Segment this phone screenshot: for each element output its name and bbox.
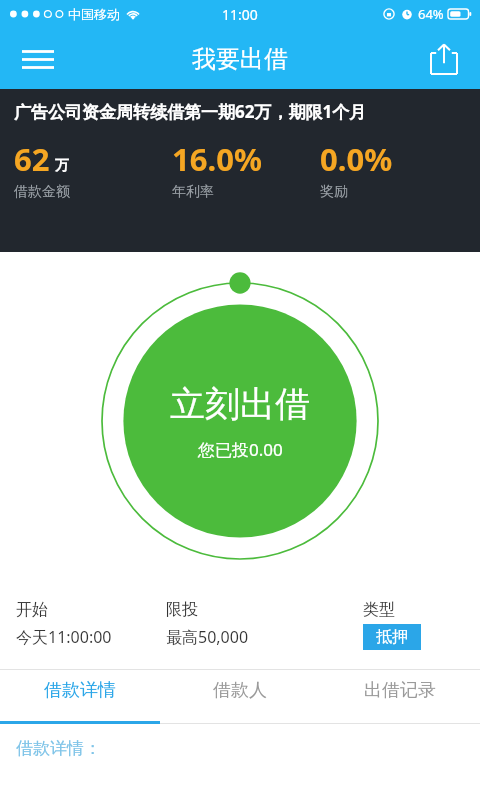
staticText: 62 xyxy=(14,138,50,180)
staticText: 奖励 xyxy=(320,183,348,201)
staticText: 年利率 xyxy=(172,183,214,201)
staticText: 出借记录 xyxy=(364,679,436,702)
staticText: 中国移动 xyxy=(68,6,120,22)
button[interactable]: 借款详情 xyxy=(0,670,160,724)
staticText: 限投 xyxy=(166,600,198,620)
staticText: 我要出借 xyxy=(192,44,288,74)
staticText: 16.0% xyxy=(172,138,262,180)
staticText: 万 xyxy=(55,157,69,175)
staticText: 借款详情： xyxy=(16,738,101,759)
button[interactable]: 借款人 xyxy=(160,670,320,724)
button[interactable]: 出借记录 xyxy=(320,670,480,724)
staticText: 11:00 xyxy=(222,5,258,24)
staticText: 广告公司资金周转续借第一期62万，期限1个月 xyxy=(14,100,367,123)
button[interactable]: Share xyxy=(420,35,468,83)
button[interactable]: 立刻出借 xyxy=(100,281,380,561)
staticText: 立刻出借 xyxy=(170,382,310,426)
staticText: 今天11:00:00 xyxy=(16,626,112,648)
staticText: 借款详情 xyxy=(44,679,116,702)
button[interactable]: 抵押 xyxy=(363,624,421,650)
staticText: 最高50,000 xyxy=(166,626,249,648)
staticText: 开始 xyxy=(16,600,48,620)
staticText: 类型 xyxy=(363,600,395,620)
staticText: 借款人 xyxy=(213,679,267,702)
staticText: 借款金额 xyxy=(14,183,70,201)
staticText: 抵押 xyxy=(376,627,408,647)
staticText: 您已投0.00 xyxy=(198,438,283,461)
staticText: 64% xyxy=(418,5,444,23)
staticText: 0.0% xyxy=(320,138,393,180)
button[interactable]: Menu xyxy=(12,33,64,85)
